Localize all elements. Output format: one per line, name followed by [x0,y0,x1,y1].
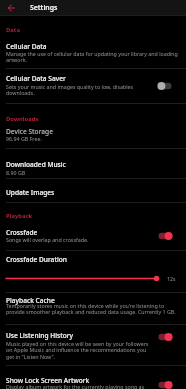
staticText: Manage the use of cellular data for upda… [6,50,178,64]
staticText: Crossfade [6,228,38,237]
staticText: Playback Cache [6,296,55,305]
staticText: Temporarily stores music on this device … [6,302,176,316]
button[interactable]: Crossfade Duration [0,251,186,292]
staticText: Downloaded Music [6,160,66,169]
staticText: Sets your music and images quality to lo… [6,83,134,97]
staticText: Playback [6,212,33,220]
staticText: Cellular Data [6,42,47,51]
button[interactable]: Downloaded Music [0,149,186,178]
button[interactable]: Show Lock Screen Artwork [0,366,186,389]
button[interactable]: Crossfade [0,222,186,250]
button[interactable]: Cellular Data [0,38,186,68]
staticText: Update Images [6,188,55,197]
button[interactable]: Use Listening History [0,325,186,365]
staticText: Settings [30,3,58,12]
staticText: 96.94 GB Free. [6,135,42,142]
staticText: 12s [167,275,176,282]
button[interactable]: Update Images [0,179,186,202]
staticText: 8.90 GB [6,169,26,176]
button[interactable] [4,1,18,15]
button[interactable]: Cellular Data Saver [0,69,186,103]
button[interactable]: Playback Cache [0,293,186,324]
staticText: Songs will overlap and crossfade. [6,236,89,243]
staticText: Cellular Data Saver [6,74,66,83]
staticText: Data [6,26,20,34]
staticText: Use Listening History [6,331,73,340]
staticText: Music played on this device will be seen… [6,340,149,361]
staticText: Display album artwork for the currently … [6,383,145,389]
staticText: Downloads [6,115,39,123]
staticText: Show Lock Screen Artwork [6,376,90,385]
staticText: Device Storage [6,127,53,136]
staticText: Crossfade Duration [6,255,67,264]
